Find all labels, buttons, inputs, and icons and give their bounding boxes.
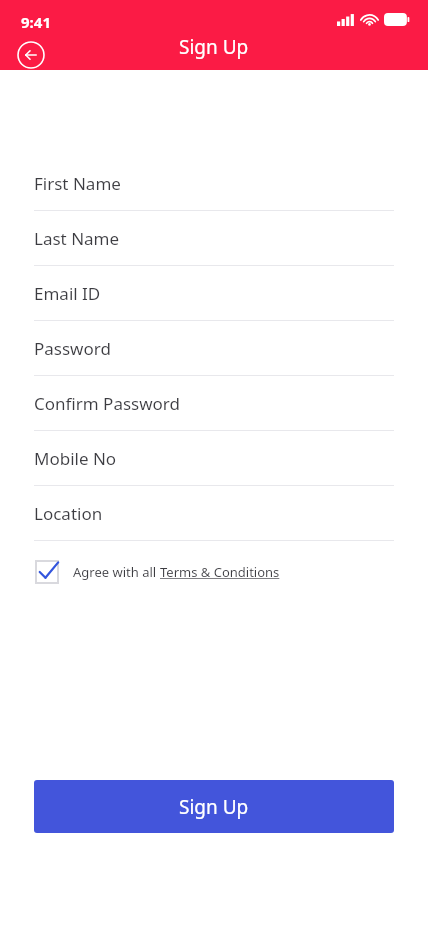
staticText: 9:41 (21, 12, 51, 32)
staticText: First Name (34, 172, 121, 195)
button[interactable]: Mobile No (34, 431, 394, 486)
button[interactable]: Terms & Conditions (160, 563, 280, 581)
staticText: Sign Up (179, 794, 249, 820)
button[interactable]: Email ID (34, 266, 394, 321)
button[interactable]: First Name (34, 156, 394, 211)
staticText: Password (34, 337, 111, 360)
button[interactable]: Confirm Password (34, 376, 394, 431)
button[interactable]: Password (34, 321, 394, 376)
staticText: Email ID (34, 282, 101, 305)
staticText: Last Name (34, 227, 120, 250)
staticText: Mobile No (34, 447, 117, 470)
staticText: Confirm Password (34, 392, 180, 415)
button[interactable]: Back (17, 41, 45, 69)
button[interactable]: Agree with all (34, 559, 280, 585)
staticText: Sign Up (179, 34, 249, 60)
staticText: Agree with all (73, 563, 160, 581)
button[interactable]: Sign Up (34, 780, 394, 833)
button[interactable]: Location (34, 486, 394, 541)
button[interactable]: Last Name (34, 211, 394, 266)
staticText: Location (34, 502, 103, 525)
